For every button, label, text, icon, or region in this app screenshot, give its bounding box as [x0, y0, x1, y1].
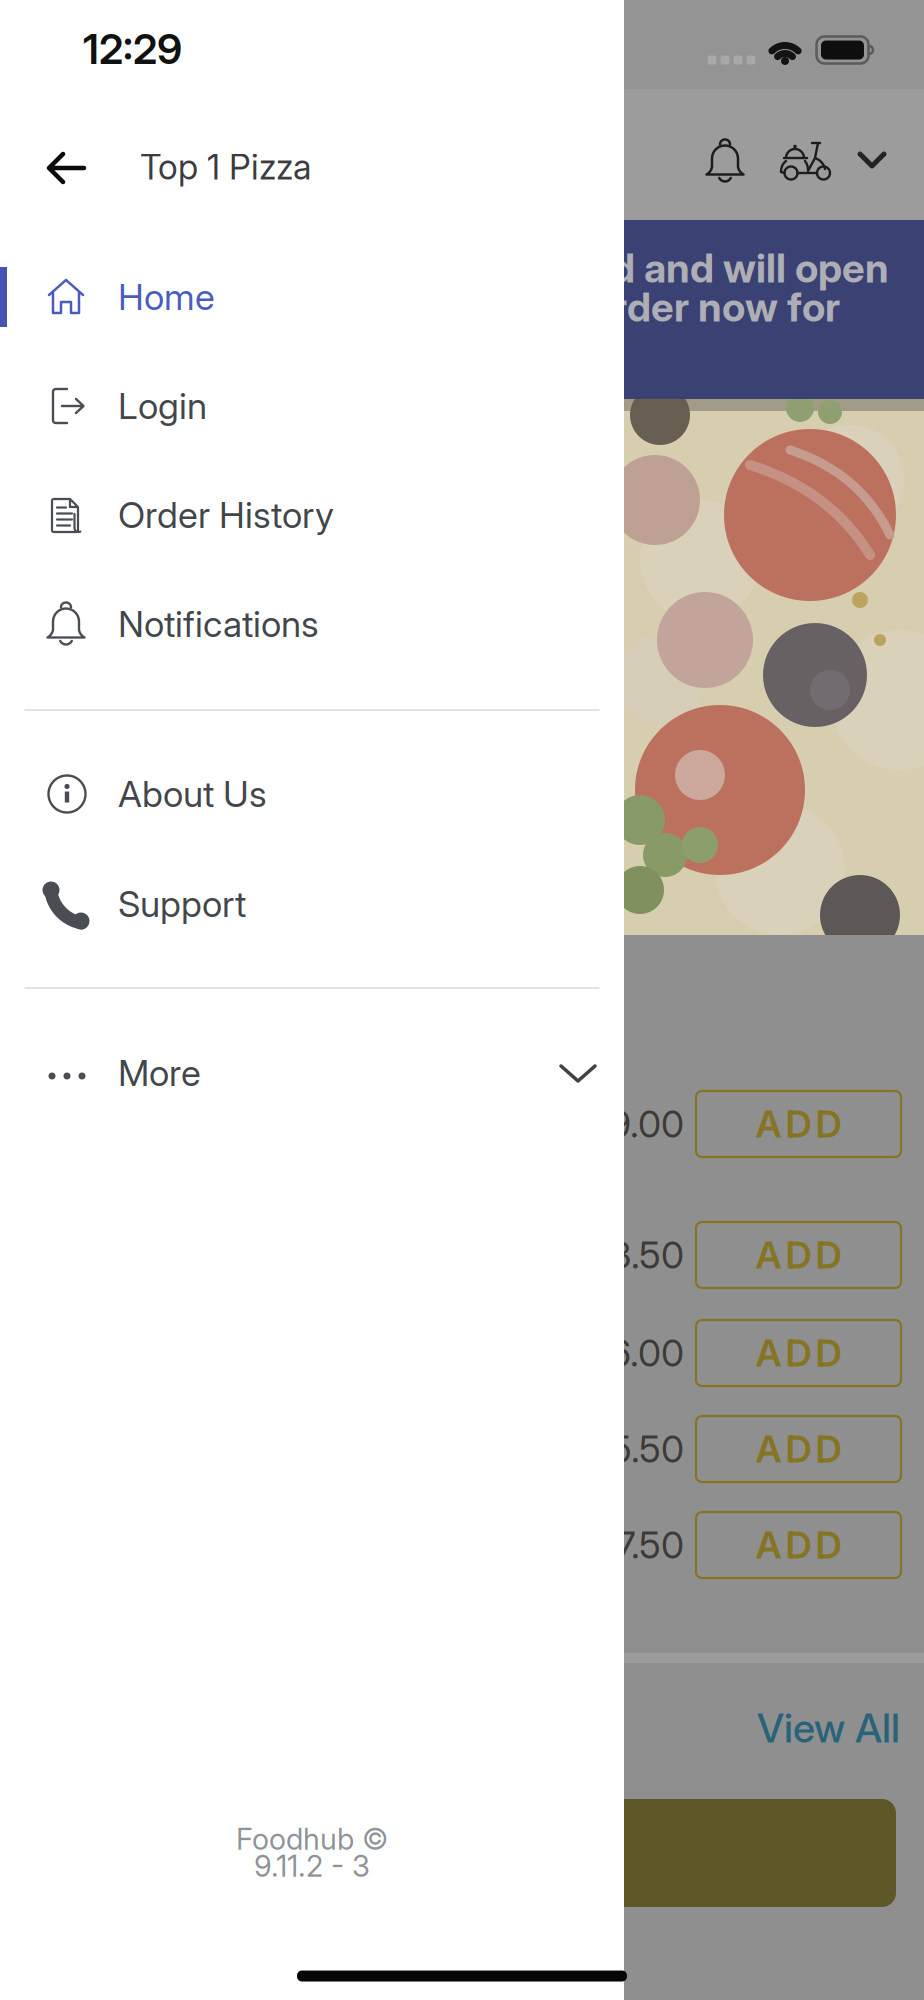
button[interactable]: Login	[0, 356, 624, 456]
button[interactable]: Support	[0, 854, 624, 954]
button[interactable]: More	[0, 1023, 624, 1123]
staticText: Order History	[118, 494, 334, 536]
button[interactable]: ADD	[696, 1222, 901, 1288]
staticText: Foodhub ©	[236, 1822, 388, 1856]
staticText: Login	[118, 385, 207, 427]
staticText: ADD	[755, 1331, 841, 1375]
button[interactable]: Delivery	[774, 132, 838, 188]
button[interactable]: More options	[842, 132, 902, 188]
staticText: £6.00	[587, 1331, 684, 1375]
staticText: Notifications	[118, 603, 319, 645]
button[interactable]: About Us	[0, 744, 624, 844]
staticText: More	[118, 1052, 201, 1094]
button[interactable]: Order History	[0, 465, 624, 565]
staticText: Top 1 Pizza	[140, 147, 311, 187]
staticText: Home	[118, 276, 215, 318]
button[interactable]: ADD	[696, 1416, 901, 1482]
button[interactable]: Notifications	[697, 131, 753, 191]
button[interactable]: Back	[39, 133, 97, 203]
button[interactable]: View Basket	[60, 1799, 896, 1907]
staticText: £9.00	[587, 1102, 684, 1146]
staticText: £3.50	[587, 1233, 684, 1277]
button[interactable]: Home	[0, 247, 624, 347]
staticText: ADD	[755, 1102, 841, 1146]
staticText: Support	[118, 883, 246, 925]
button[interactable]: ADD	[696, 1320, 901, 1386]
staticText: order now for	[589, 283, 840, 331]
staticText: View All	[757, 1704, 900, 1752]
staticText: ADD	[755, 1523, 841, 1567]
staticText: ADD	[755, 1427, 841, 1471]
staticText: About Us	[118, 773, 267, 815]
button[interactable]: ADD	[696, 1091, 901, 1157]
staticText: £5.50	[588, 1427, 684, 1471]
staticText: sed and will open	[567, 244, 889, 292]
button[interactable]: ADD	[696, 1512, 901, 1578]
button[interactable]: Notifications	[0, 574, 624, 674]
staticText: £7.50	[594, 1523, 684, 1567]
staticText: 9.11.2 - 3	[254, 1849, 370, 1883]
button[interactable]: View All	[700, 1698, 900, 1758]
staticText: ADD	[755, 1233, 841, 1277]
staticText: 12:29	[83, 25, 182, 73]
